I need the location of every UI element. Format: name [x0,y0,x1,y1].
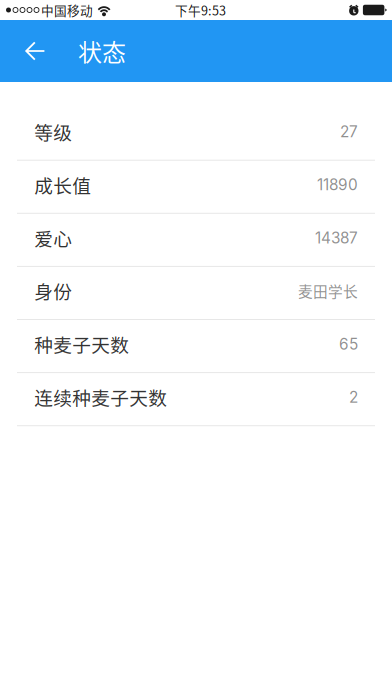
staticText: 成长值 [34,171,91,198]
button[interactable]: 成长值 [17,161,375,214]
staticText: 下午9:53 [175,1,226,19]
staticText: 等级 [34,118,72,145]
staticText: 27 [340,122,358,141]
button[interactable]: 身份 [17,267,375,320]
staticText: 麦田学长 [298,280,358,301]
staticText: 11890 [317,175,358,194]
staticText: 65 [339,335,358,353]
staticText: 14387 [315,229,358,247]
staticText: 爱心 [34,224,72,251]
staticText: 中国移动 [41,1,93,19]
staticText: 2 [349,388,358,406]
button[interactable]: 连续种麦子天数 [17,373,375,426]
staticText: 身份 [34,277,72,304]
button[interactable]: 爱心 [17,214,375,267]
button[interactable]: 种麦子天数 [17,320,375,373]
staticText: 状态 [78,34,126,68]
staticText: 种麦子天数 [34,330,129,357]
staticText: 连续种麦子天数 [34,384,167,411]
button[interactable]: Back [13,20,57,82]
button[interactable]: 等级 [17,108,375,161]
